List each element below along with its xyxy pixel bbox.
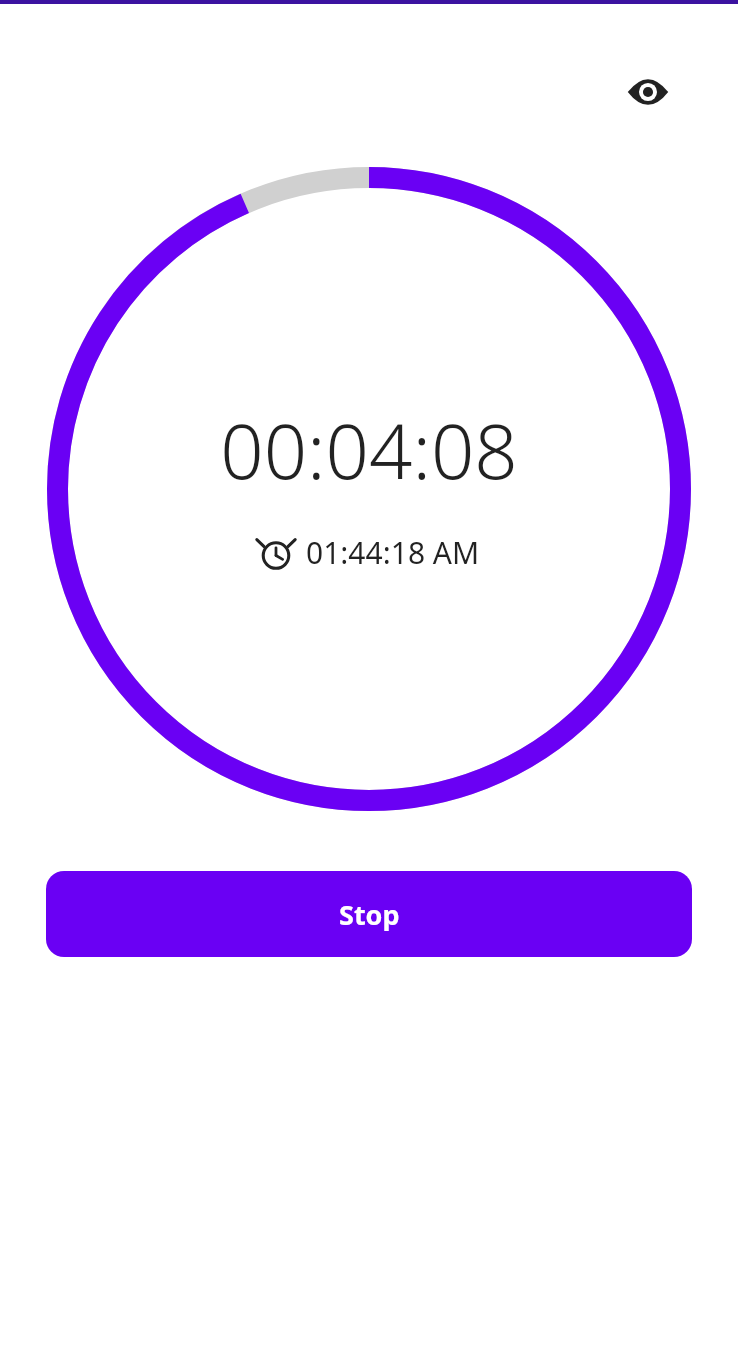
- button[interactable]: Toggle visibility: [612, 56, 684, 128]
- staticText: 00:04:08: [220, 398, 518, 502]
- staticText: Stop: [339, 896, 400, 933]
- staticText: 01:44:18 AM: [306, 532, 480, 573]
- button[interactable]: Stop: [46, 871, 692, 957]
